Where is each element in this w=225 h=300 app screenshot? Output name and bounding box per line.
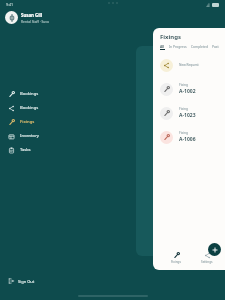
button[interactable]: Fixings	[2, 115, 150, 129]
button[interactable]: New Request	[153, 53, 225, 77]
staticText: Past	[212, 44, 219, 48]
staticText: Fixing	[179, 131, 188, 135]
button[interactable]: Fixing	[153, 125, 225, 149]
button[interactable]: Sign Out	[0, 274, 41, 288]
staticText: Bookings	[20, 91, 39, 97]
staticText: Completed	[191, 44, 208, 48]
staticText: New Request	[179, 63, 199, 67]
button[interactable]: Fixing	[153, 77, 225, 101]
button[interactable]: Inventory	[2, 129, 150, 143]
button[interactable]: Add fixing	[208, 243, 221, 256]
staticText: Inventory	[20, 133, 39, 139]
staticText: Tasks	[20, 147, 31, 153]
button[interactable]: Bookings	[2, 87, 150, 101]
staticText: Fixing	[179, 83, 188, 87]
staticText: A-1002	[179, 88, 196, 95]
staticText: Settings	[201, 260, 213, 264]
staticText: Susan Gill	[21, 12, 43, 18]
staticText: Fixings	[160, 33, 182, 41]
button[interactable]: Fixing	[153, 101, 225, 125]
button[interactable]: In Progress	[169, 44, 191, 51]
button[interactable]: Bookings	[2, 101, 150, 115]
button[interactable]: Past	[212, 44, 223, 51]
staticText: 9:41	[6, 2, 14, 7]
staticText: A-1023	[179, 112, 196, 119]
staticText: Fixings	[20, 119, 35, 125]
button[interactable]: Fixings	[167, 248, 185, 268]
button[interactable]: Tasks	[2, 143, 150, 157]
button[interactable]: Completed	[191, 44, 212, 51]
staticText: Bookings	[20, 105, 39, 111]
staticText: In Progress	[169, 44, 187, 48]
staticText: Rental Staff · Suva	[21, 19, 49, 23]
staticText: Sign Out	[18, 279, 35, 284]
staticText: All	[160, 44, 165, 48]
button[interactable]: Susan Gill	[0, 9, 53, 26]
staticText: Fixing	[179, 107, 188, 111]
staticText: A-1006	[179, 136, 196, 143]
button[interactable]: All	[160, 44, 169, 51]
staticText: Fixings	[171, 260, 181, 264]
button[interactable]: Settings	[197, 248, 217, 268]
